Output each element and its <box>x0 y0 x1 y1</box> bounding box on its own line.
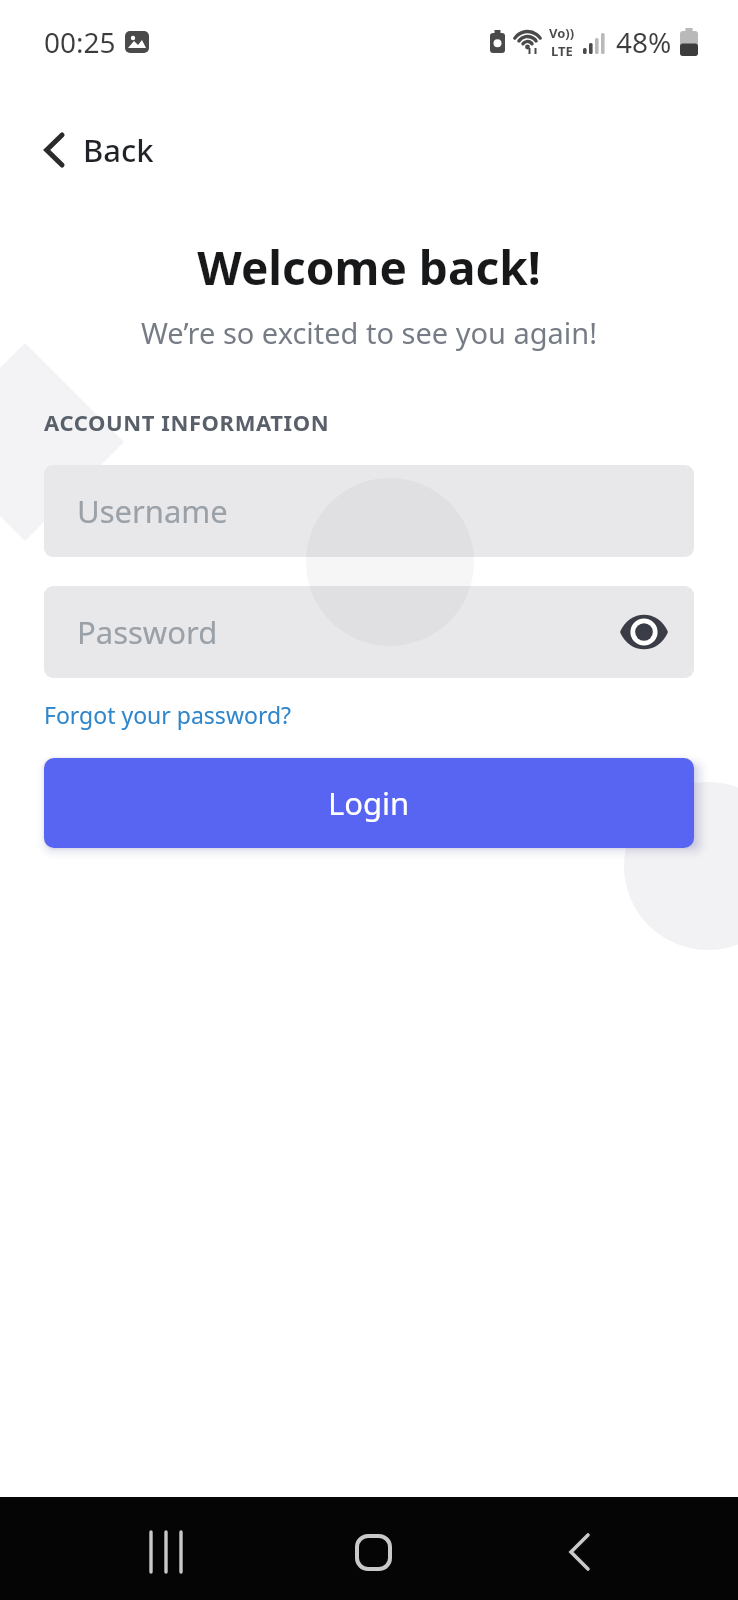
staticText: We’re so excited to see you again! <box>0 313 738 352</box>
button[interactable]: Back <box>44 129 154 171</box>
button[interactable]: Forgot your password? <box>44 699 292 730</box>
button[interactable]: Username <box>44 465 694 557</box>
staticText: 00:25 <box>44 23 116 61</box>
staticText: Username <box>77 490 228 532</box>
button[interactable] <box>543 1516 615 1588</box>
staticText: Password <box>77 611 218 653</box>
button[interactable] <box>130 1516 202 1588</box>
staticText: 48% <box>616 23 672 61</box>
staticText: LTE <box>551 42 573 60</box>
button[interactable]: Login <box>44 758 694 848</box>
button[interactable] <box>337 1516 409 1588</box>
staticText: Welcome back! <box>0 236 738 299</box>
staticText: Vo)) <box>549 24 575 42</box>
staticText: Login <box>328 782 410 824</box>
staticText: Back <box>83 129 154 171</box>
button[interactable]: Password <box>44 586 694 678</box>
staticText: ACCOUNT INFORMATION <box>44 407 330 437</box>
